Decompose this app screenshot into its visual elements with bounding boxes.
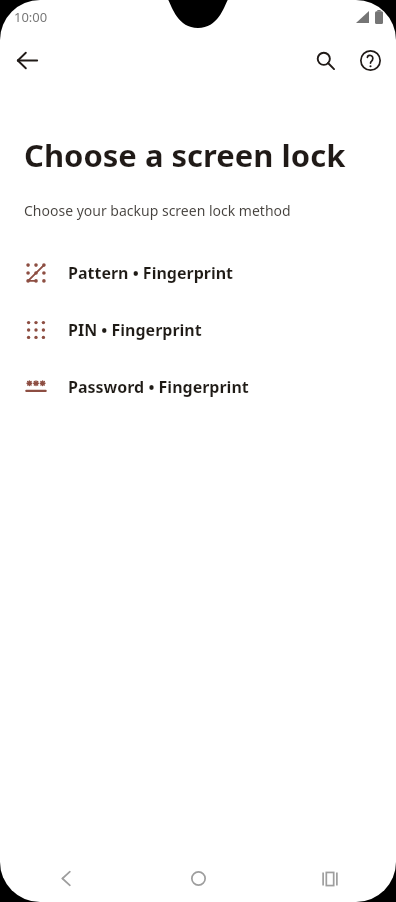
staticText: PIN • Fingerprint	[68, 319, 202, 341]
button[interactable]: Home	[132, 855, 264, 902]
button[interactable]: PIN • Fingerprint	[0, 301, 396, 358]
button[interactable]: Recent apps	[264, 855, 396, 902]
staticText: Choose a screen lock	[24, 134, 346, 176]
staticText: Pattern • Fingerprint	[68, 262, 234, 284]
button[interactable]: Search	[305, 40, 345, 80]
button[interactable]: Help	[350, 40, 390, 80]
staticText: Choose your backup screen lock method	[24, 201, 291, 220]
button[interactable]: Pattern • Fingerprint	[0, 244, 396, 301]
staticText: 10:00	[14, 8, 48, 26]
button[interactable]: Back	[7, 40, 47, 80]
button[interactable]: Back	[0, 855, 132, 902]
staticText: Password • Fingerprint	[68, 376, 249, 398]
button[interactable]: Password • Fingerprint	[0, 358, 396, 415]
